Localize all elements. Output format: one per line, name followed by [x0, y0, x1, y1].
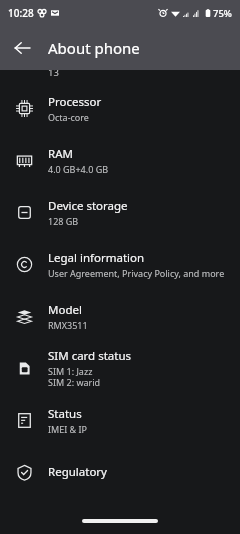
- button[interactable]: RAM: [0, 134, 240, 186]
- staticText: Status: [48, 406, 82, 422]
- staticText: 75%: [213, 7, 232, 20]
- staticText: RMX3511: [48, 319, 88, 331]
- button[interactable]: Processor: [0, 82, 240, 134]
- staticText: Octa-core: [48, 111, 89, 123]
- staticText: SIM card status: [48, 348, 132, 364]
- staticText: Processor: [48, 94, 102, 110]
- button[interactable]: Legal information: [0, 238, 240, 290]
- staticText: Device storage: [48, 198, 128, 214]
- staticText: Legal information: [48, 250, 145, 266]
- staticText: SIM 1: Jazz SIM 2: warid: [48, 365, 101, 389]
- button[interactable]: Model: [0, 290, 240, 342]
- button[interactable]: 13: [0, 62, 240, 82]
- button[interactable]: SIM card status: [0, 342, 240, 394]
- staticText: 13: [48, 66, 59, 79]
- staticText: Model: [48, 302, 82, 318]
- button[interactable]: Back: [0, 26, 44, 70]
- button[interactable]: Status: [0, 394, 240, 446]
- staticText: IMEI & IP: [48, 423, 88, 435]
- staticText: 128 GB: [48, 215, 79, 227]
- button[interactable]: Regulatory: [0, 446, 240, 498]
- button[interactable]: Device storage: [0, 186, 240, 238]
- staticText: About phone: [48, 38, 140, 58]
- staticText: RAM: [48, 146, 73, 162]
- staticText: 4.0 GB+4.0 GB: [48, 163, 109, 175]
- staticText: User Agreement, Privacy Policy, and more: [48, 267, 225, 279]
- staticText: Regulatory: [48, 464, 107, 480]
- staticText: 10:28: [8, 6, 34, 20]
